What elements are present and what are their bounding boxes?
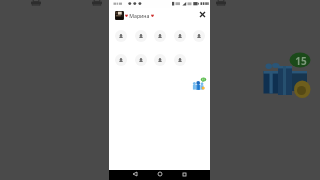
button[interactable]: Contact avatar bbox=[135, 30, 147, 42]
staticText: 15 bbox=[295, 54, 307, 68]
button[interactable]: Contact avatar bbox=[154, 54, 166, 66]
button[interactable]: Contact avatar bbox=[193, 30, 205, 42]
button[interactable]: Contact avatar bbox=[174, 30, 186, 42]
button[interactable]: Profile photo bbox=[115, 11, 124, 20]
button[interactable]: Contact avatar bbox=[115, 30, 127, 42]
button[interactable]: Contact avatar bbox=[154, 30, 166, 42]
button[interactable]: Recent apps bbox=[180, 170, 188, 178]
button[interactable]: Contact avatar bbox=[115, 54, 127, 66]
button[interactable]: Contact avatar bbox=[174, 54, 186, 66]
button[interactable]: Group members bbox=[192, 76, 208, 94]
button[interactable]: Contact avatar bbox=[135, 54, 147, 66]
button[interactable]: Home bbox=[156, 170, 164, 178]
staticText: Марина bbox=[128, 12, 151, 19]
button[interactable]: Back bbox=[131, 170, 139, 178]
button[interactable]: Марина bbox=[125, 11, 154, 19]
button[interactable]: Close bbox=[197, 9, 208, 20]
